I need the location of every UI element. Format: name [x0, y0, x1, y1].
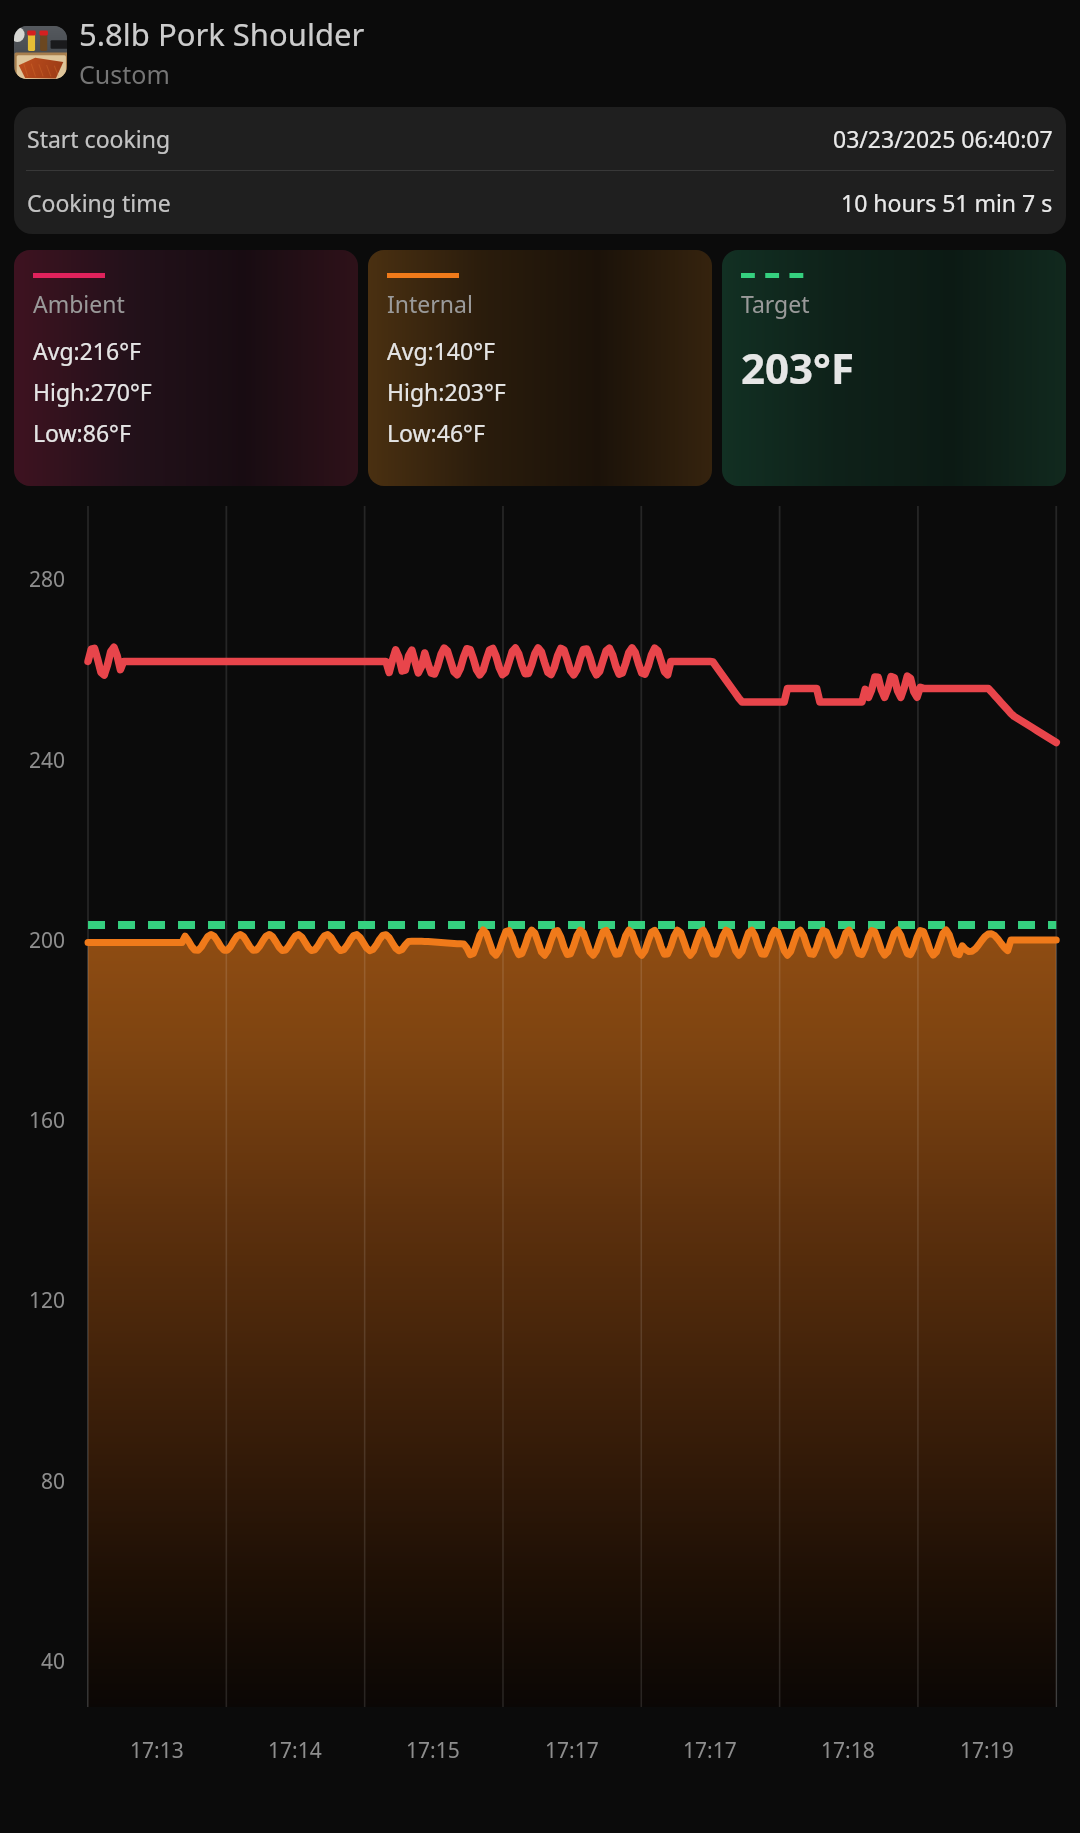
staticText: 17:13 [130, 1736, 184, 1765]
staticText: High:203°F [387, 376, 506, 407]
button[interactable]: 280 [0, 506, 1080, 1833]
staticText: High:270°F [33, 376, 152, 407]
button[interactable]: 5.8lb Pork Shoulder [14, 13, 1066, 91]
staticText: Start cooking [27, 123, 171, 154]
staticText: 200 [29, 926, 66, 955]
button[interactable]: Start cooking [14, 107, 1066, 234]
staticText: 80 [41, 1467, 66, 1496]
staticText: 203°F [741, 339, 854, 396]
staticText: 280 [29, 565, 66, 594]
staticText: 17:18 [821, 1736, 875, 1765]
button[interactable]: Target [722, 250, 1066, 486]
staticText: 240 [29, 746, 66, 775]
staticText: 5.8lb Pork Shoulder [79, 13, 365, 55]
staticText: 160 [29, 1106, 66, 1135]
staticText: 17:19 [960, 1736, 1014, 1765]
staticText: Ambient [33, 288, 125, 319]
staticText: 17:17 [683, 1736, 737, 1765]
staticText: Custom [79, 57, 170, 91]
staticText: Low:86°F [33, 417, 131, 448]
staticText: 17:15 [406, 1736, 460, 1765]
staticText: Internal [387, 288, 473, 319]
staticText: Low:46°F [387, 417, 485, 448]
button[interactable]: Ambient [14, 250, 358, 486]
staticText: Cooking time [27, 187, 171, 218]
staticText: 120 [29, 1286, 66, 1315]
button[interactable]: Internal [368, 250, 712, 486]
staticText: 17:17 [545, 1736, 599, 1765]
staticText: 03/23/2025 06:40:07 [833, 123, 1053, 154]
staticText: 17:14 [268, 1736, 322, 1765]
staticText: Avg:216°F [33, 335, 141, 366]
staticText: Avg:140°F [387, 335, 495, 366]
staticText: Target [741, 288, 810, 319]
staticText: 40 [41, 1647, 66, 1676]
staticText: 10 hours 51 min 7 s [841, 187, 1053, 218]
